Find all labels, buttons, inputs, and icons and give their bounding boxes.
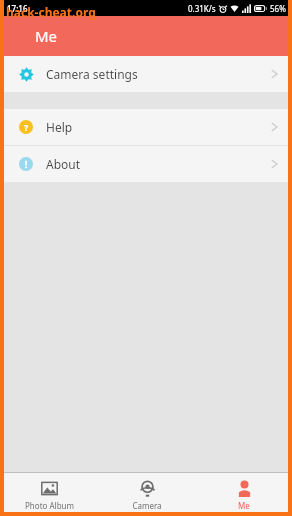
staticText: 56% xyxy=(270,3,286,14)
button[interactable]: About xyxy=(0,146,292,182)
staticText: Help xyxy=(46,119,73,135)
button[interactable]: Me xyxy=(195,473,292,516)
staticText: 0.31K/s xyxy=(188,3,216,14)
staticText: ? xyxy=(24,121,29,133)
staticText: Photo Album xyxy=(25,500,74,511)
staticText: 17:16 xyxy=(7,3,28,14)
staticText: Camera settings xyxy=(46,66,138,82)
staticText: Camera xyxy=(132,500,162,511)
staticText: Me xyxy=(238,500,250,511)
staticText: Me xyxy=(35,26,58,46)
button[interactable]: Camera xyxy=(98,473,195,516)
button[interactable]: Photo Album xyxy=(0,473,98,516)
button[interactable]: Camera settings xyxy=(0,56,292,92)
button[interactable]: ? xyxy=(0,109,292,145)
staticText: About xyxy=(46,156,81,172)
staticText: hack-cheat.org xyxy=(6,4,96,20)
